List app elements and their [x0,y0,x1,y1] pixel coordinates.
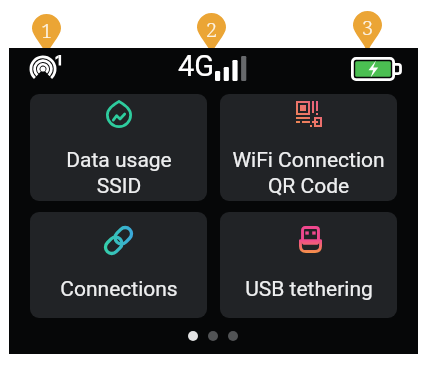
staticText: 2 [206,16,218,43]
button[interactable]: Page 3 [228,331,238,341]
button[interactable]: Connections [30,212,207,318]
button[interactable]: Hotspot, 1 device connected [29,55,67,85]
button[interactable]: Data usage SSID [30,94,207,201]
staticText: Connections [60,277,178,302]
button[interactable]: Page 2 [208,331,218,341]
staticText: USB tethering [245,277,373,302]
staticText: WiFi Connection QR Code [232,148,385,198]
button[interactable]: Battery charging [351,57,399,81]
button[interactable]: Page 1 [188,331,198,341]
staticText: 3 [362,14,374,41]
staticText: Data usage SSID [66,148,172,198]
button[interactable]: WiFi Connection QR Code [220,94,397,201]
button[interactable]: USB tethering [220,212,397,318]
staticText: 1 [41,17,53,44]
staticText: 4G [178,49,215,83]
